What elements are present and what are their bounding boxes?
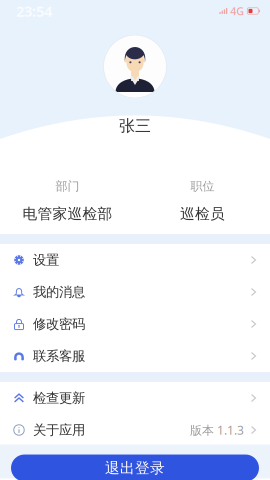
staticText: 版本 1.1.3 (190, 422, 244, 438)
staticText: 我的消息 (33, 284, 85, 300)
staticText: 23:54 (16, 1, 52, 21)
button[interactable]: 我的消息 (0, 276, 270, 308)
staticText: 修改密码 (33, 316, 85, 332)
staticText: 电管家巡检部 (22, 205, 112, 223)
staticText: 4G (230, 4, 244, 18)
button[interactable]: 联系客服 (0, 340, 270, 372)
staticText: 职位 (190, 179, 214, 194)
button[interactable]: 设置 (0, 244, 270, 276)
button[interactable]: 退出登录 (11, 454, 259, 480)
staticText: 关于应用 (33, 422, 85, 438)
staticText: 联系客服 (33, 348, 85, 364)
button[interactable]: 修改密码 (0, 308, 270, 340)
staticText: 退出登录 (105, 459, 165, 477)
staticText: 巡检员 (180, 205, 225, 223)
staticText: 部门 (55, 179, 79, 194)
staticText: 设置 (33, 252, 59, 268)
button[interactable]: 检查更新 (0, 382, 270, 414)
staticText: 检查更新 (33, 390, 85, 406)
staticText: 张三 (119, 116, 151, 136)
button[interactable]: 关于应用 (0, 414, 270, 446)
